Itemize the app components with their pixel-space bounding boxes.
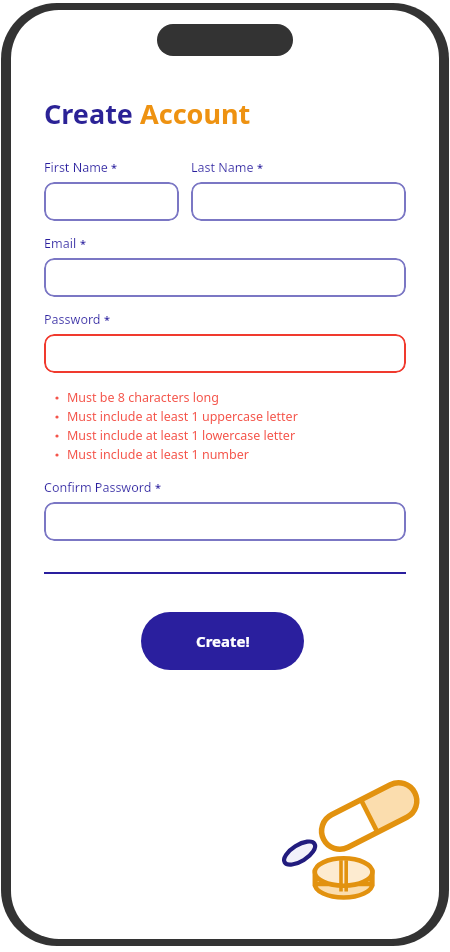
staticText: Account: [133, 95, 251, 132]
staticText: Confirm Password: [44, 479, 152, 496]
staticText: *: [257, 160, 263, 175]
staticText: Must include at least 1 lowercase letter: [67, 427, 296, 444]
staticText: Must be 8 characters long: [67, 389, 220, 406]
button[interactable]: [44, 182, 179, 221]
staticText: Must include at least 1 number: [67, 446, 249, 463]
staticText: First Name: [44, 159, 108, 176]
staticText: Email: [44, 235, 77, 252]
button[interactable]: [191, 182, 406, 221]
button[interactable]: [44, 334, 406, 373]
staticText: Password: [44, 311, 101, 328]
button[interactable]: [44, 502, 406, 541]
staticText: Must include at least 1 uppercase letter: [67, 408, 298, 425]
button[interactable]: [44, 258, 406, 297]
staticText: Create!: [196, 631, 250, 651]
staticText: *: [155, 480, 161, 495]
staticText: *: [80, 236, 86, 251]
staticText: *: [111, 160, 117, 175]
staticText: *: [104, 312, 110, 327]
staticText: Create: [44, 95, 133, 132]
button[interactable]: Create!: [141, 612, 304, 670]
staticText: Last Name: [191, 159, 254, 176]
